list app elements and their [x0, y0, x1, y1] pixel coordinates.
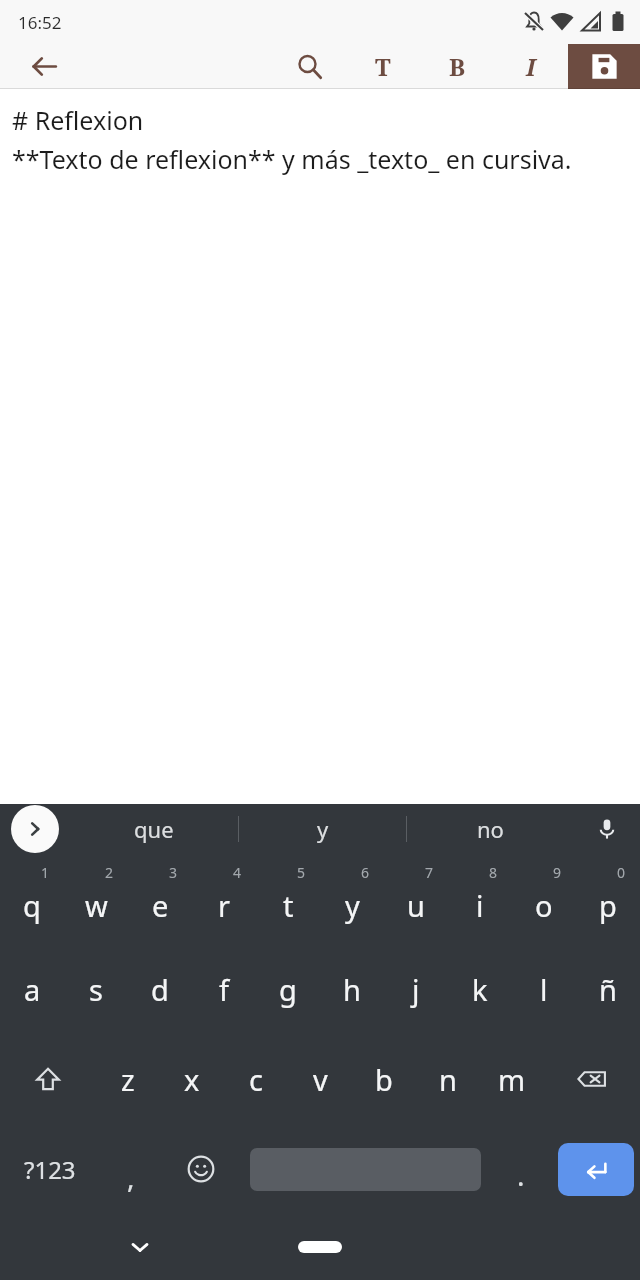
staticText: t	[283, 886, 294, 925]
staticText: b	[375, 1060, 393, 1099]
button[interactable]: i	[448, 854, 512, 944]
staticText: z	[121, 1060, 135, 1099]
staticText: no	[477, 814, 504, 844]
button[interactable]: o	[512, 854, 576, 944]
button[interactable]: Home	[298, 1241, 342, 1253]
staticText: I	[526, 50, 536, 83]
staticText: d	[151, 970, 169, 1009]
button[interactable]: v	[288, 1034, 352, 1124]
staticText: u	[407, 886, 425, 925]
button[interactable]: c	[224, 1034, 288, 1124]
button[interactable]: b	[352, 1034, 416, 1124]
staticText: 16:52	[18, 11, 62, 34]
staticText: T	[375, 50, 391, 83]
button[interactable]: Shift	[0, 1034, 96, 1124]
button[interactable]: Backspace	[544, 1034, 640, 1124]
button[interactable]: Save	[568, 44, 640, 89]
button[interactable]: r	[192, 854, 256, 944]
button[interactable]: B	[420, 44, 494, 89]
button[interactable]: h	[320, 944, 384, 1034]
staticText: x	[184, 1060, 200, 1099]
button[interactable]: x	[160, 1034, 224, 1124]
button[interactable]: I	[494, 44, 568, 89]
staticText: 2	[105, 863, 114, 882]
staticText: n	[439, 1060, 457, 1099]
staticText: g	[279, 970, 297, 1009]
button[interactable]: t	[256, 854, 320, 944]
staticText: w	[85, 886, 108, 925]
button[interactable]: More suggestions	[0, 804, 70, 854]
staticText: k	[472, 970, 488, 1009]
button[interactable]: ñ	[576, 944, 640, 1034]
button[interactable]: Voice input	[574, 804, 640, 854]
staticText: f	[219, 970, 229, 1009]
button[interactable]: y	[320, 854, 384, 944]
staticText: o	[535, 886, 553, 925]
button[interactable]: # Reflexion **Texto de reflexion** y más…	[0, 89, 640, 804]
button[interactable]: u	[384, 854, 448, 944]
button[interactable]: Enter	[558, 1143, 634, 1196]
staticText: y	[345, 886, 360, 925]
button[interactable]: que	[70, 804, 238, 854]
staticText: 1	[41, 863, 50, 882]
staticText: ñ	[599, 970, 617, 1009]
staticText: r	[218, 886, 230, 925]
staticText: 4	[233, 863, 242, 882]
staticText: a	[24, 970, 41, 1009]
button[interactable]: j	[384, 944, 448, 1034]
staticText: h	[343, 970, 361, 1009]
button[interactable]: g	[256, 944, 320, 1034]
button[interactable]: e	[128, 854, 192, 944]
button[interactable]: ,	[100, 1124, 162, 1214]
staticText: ?123	[24, 1153, 76, 1186]
staticText: m	[498, 1060, 526, 1099]
staticText: c	[249, 1060, 263, 1099]
staticText: que	[134, 814, 174, 844]
button[interactable]: .	[491, 1124, 551, 1214]
staticText: 6	[361, 863, 370, 882]
staticText: e	[152, 886, 169, 925]
button[interactable]: Back	[0, 44, 88, 89]
staticText: 7	[425, 863, 434, 882]
button[interactable]: no	[407, 804, 574, 854]
staticText: 5	[297, 863, 306, 882]
button[interactable]: Search	[272, 44, 346, 89]
staticText: 0	[617, 863, 626, 882]
staticText: ,	[127, 1158, 135, 1196]
staticText: 9	[553, 863, 562, 882]
staticText: B	[449, 50, 466, 83]
button[interactable]: y	[239, 804, 406, 854]
button[interactable]: ?123	[0, 1124, 100, 1214]
button[interactable]: s	[64, 944, 128, 1034]
staticText: j	[412, 970, 420, 1009]
staticText: q	[23, 886, 41, 925]
button[interactable]: a	[0, 944, 64, 1034]
staticText: i	[476, 886, 484, 925]
staticText: 8	[489, 863, 498, 882]
button[interactable]: d	[128, 944, 192, 1034]
button[interactable]: z	[96, 1034, 160, 1124]
staticText: 3	[169, 863, 178, 882]
button[interactable]: Emoji	[162, 1124, 240, 1214]
staticText: y	[317, 814, 329, 844]
button[interactable]: l	[512, 944, 576, 1034]
button[interactable]: k	[448, 944, 512, 1034]
button[interactable]: p	[576, 854, 640, 944]
button[interactable]: f	[192, 944, 256, 1034]
staticText: .	[517, 1156, 525, 1194]
staticText: s	[89, 970, 103, 1009]
button[interactable]: w	[64, 854, 128, 944]
button[interactable]: n	[416, 1034, 480, 1124]
button[interactable]: T	[346, 44, 420, 89]
staticText: v	[313, 1060, 328, 1099]
staticText: l	[540, 970, 548, 1009]
staticText: p	[599, 886, 617, 925]
button[interactable]: q	[0, 854, 64, 944]
staticText: # Reflexion **Texto de reflexion** y más…	[12, 103, 572, 176]
button[interactable]: Hide keyboard	[116, 1223, 164, 1271]
button[interactable]: m	[480, 1034, 544, 1124]
